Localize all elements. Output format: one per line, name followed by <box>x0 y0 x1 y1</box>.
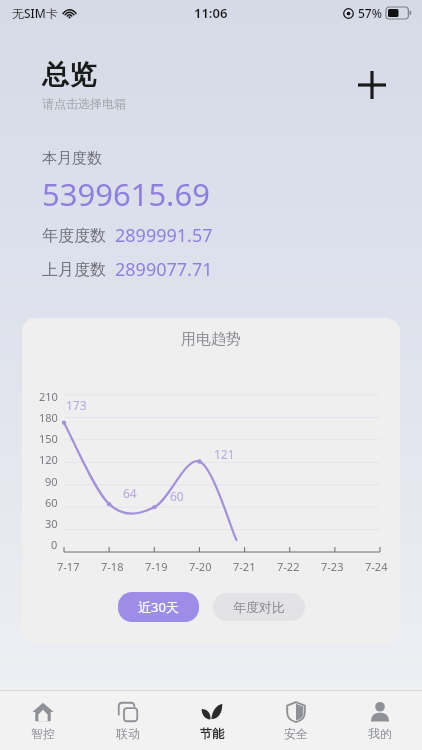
staticText: 7-24 <box>365 559 388 574</box>
staticText: 年度对比 <box>233 599 285 615</box>
staticText: 7-22 <box>277 559 300 574</box>
staticText: 57% <box>358 5 382 21</box>
staticText: 0 <box>51 537 58 552</box>
staticText: 2899991.57 <box>115 223 213 248</box>
button[interactable]: 智控 <box>0 691 85 750</box>
staticText: 总览 <box>42 58 96 92</box>
staticText: 173 <box>66 397 87 413</box>
staticText: 180 <box>39 410 58 425</box>
staticText: 64 <box>123 485 137 501</box>
staticText: 7-21 <box>233 559 256 574</box>
staticText: 60 <box>45 495 58 510</box>
staticText: 150 <box>39 431 58 446</box>
staticText: 120 <box>39 452 58 467</box>
staticText: 本月度数 <box>42 149 102 168</box>
staticText: 智控 <box>31 726 55 741</box>
staticText: 7-19 <box>145 559 168 574</box>
staticText: 121 <box>214 446 235 462</box>
staticText: 2899077.71 <box>115 257 213 282</box>
staticText: 7-18 <box>101 559 124 574</box>
staticText: 安全 <box>284 726 308 741</box>
staticText: 节能 <box>200 726 224 741</box>
staticText: 7-23 <box>321 559 344 574</box>
staticText: 60 <box>170 488 184 504</box>
button[interactable]: Add <box>350 63 394 107</box>
button[interactable]: 请点击选择电箱 <box>42 96 126 111</box>
staticText: 7-20 <box>189 559 212 574</box>
button[interactable]: 近30天 <box>118 592 199 622</box>
staticText: 90 <box>45 474 58 489</box>
staticText: 联动 <box>116 726 140 741</box>
staticText: 上月度数 <box>42 260 106 280</box>
button[interactable]: 我的 <box>338 691 422 750</box>
staticText: 年度度数 <box>42 226 106 246</box>
staticText: 30 <box>45 516 58 531</box>
button[interactable]: 联动 <box>85 691 170 750</box>
button[interactable]: 安全 <box>254 691 338 750</box>
staticText: 无SIM卡 <box>12 5 58 21</box>
staticText: 210 <box>39 389 58 404</box>
button[interactable]: 年度对比 <box>213 593 305 621</box>
staticText: 我的 <box>368 726 392 741</box>
staticText: 5399615.69 <box>42 173 210 215</box>
staticText: 用电趋势 <box>22 330 400 349</box>
staticText: 近30天 <box>138 598 179 616</box>
staticText: 11:06 <box>194 4 228 22</box>
staticText: 7-17 <box>57 559 80 574</box>
button[interactable]: 节能 <box>170 691 254 750</box>
